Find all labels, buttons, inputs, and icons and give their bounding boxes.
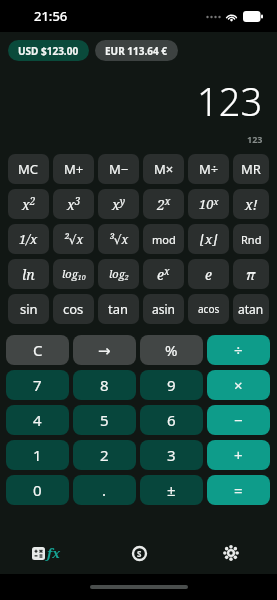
button[interactable]: − (207, 405, 270, 435)
button[interactable]: % (140, 335, 203, 365)
button[interactable]: 0 (6, 475, 69, 505)
button[interactable]: M÷ (188, 154, 229, 184)
staticText: S (137, 548, 142, 559)
button[interactable]: EUR 113.64 € (95, 40, 178, 61)
button[interactable]: ÷ (207, 335, 270, 365)
staticText: − (234, 410, 243, 430)
button[interactable]: log2 (98, 259, 139, 289)
button[interactable]: 7 (6, 370, 69, 400)
button[interactable]: Currency converter (93, 532, 185, 574)
button[interactable]: xy (98, 189, 139, 219)
staticText: ⌊x⌋ (200, 230, 218, 248)
staticText: acos (198, 302, 220, 316)
staticText: ex (157, 264, 170, 284)
button[interactable]: 3 (140, 440, 203, 470)
button[interactable]: e (188, 259, 229, 289)
button[interactable]: x2 (8, 189, 49, 219)
staticText: 2x (157, 194, 171, 214)
button[interactable]: 2 (73, 440, 136, 470)
button[interactable]: 4 (6, 405, 69, 435)
staticText: fx (47, 544, 61, 562)
button[interactable]: ²√x (53, 224, 94, 254)
button[interactable]: MR (233, 154, 269, 184)
staticText: e (205, 265, 212, 284)
button[interactable]: ± (140, 475, 203, 505)
button[interactable]: sin (8, 294, 49, 324)
staticText: EUR 113.64 € (105, 44, 168, 58)
button[interactable]: atan (233, 294, 269, 324)
button[interactable]: ⌊x⌋ (188, 224, 229, 254)
staticText: + (234, 445, 243, 465)
staticText: 9 (167, 375, 176, 395)
staticText: M× (154, 160, 174, 178)
button[interactable]: M× (143, 154, 184, 184)
button[interactable]: M+ (53, 154, 94, 184)
staticText: MC (18, 160, 39, 178)
button[interactable]: mod (143, 224, 184, 254)
button[interactable]: . (73, 475, 136, 505)
button[interactable]: M− (98, 154, 139, 184)
button[interactable]: ln (8, 259, 49, 289)
button[interactable]: MC (8, 154, 49, 184)
staticText: M− (109, 160, 129, 178)
staticText: . (102, 480, 107, 500)
button[interactable]: + (207, 440, 270, 470)
button[interactable]: x3 (53, 189, 94, 219)
button[interactable]: ³√x (98, 224, 139, 254)
staticText: atan (238, 301, 264, 317)
staticText: ²√x (64, 231, 83, 247)
staticText: 10x (199, 195, 219, 213)
staticText: ÷ (234, 340, 243, 360)
button[interactable]: 1 (6, 440, 69, 470)
staticText: 7 (33, 375, 42, 395)
staticText: → (98, 342, 111, 359)
staticText: asin (152, 301, 175, 317)
staticText: 3 (167, 445, 176, 465)
button[interactable]: 2x (143, 189, 184, 219)
staticText: tan (108, 300, 129, 318)
staticText: 1 (33, 445, 42, 465)
staticText: 2 (100, 445, 109, 465)
button[interactable]: tan (98, 294, 139, 324)
staticText: 0 (33, 480, 42, 500)
staticText: cos (63, 300, 84, 318)
button[interactable]: π (233, 259, 269, 289)
staticText: 123 (247, 133, 263, 145)
button[interactable]: Rnd (233, 224, 269, 254)
staticText: log2 (109, 266, 129, 282)
button[interactable]: 5 (73, 405, 136, 435)
staticText: M÷ (199, 160, 219, 178)
button[interactable]: asin (143, 294, 184, 324)
staticText: Rnd (241, 232, 262, 247)
button[interactable]: 6 (140, 405, 203, 435)
staticText: sin (20, 300, 38, 318)
button[interactable]: → (73, 335, 136, 365)
button[interactable]: acos (188, 294, 229, 324)
staticText: 8 (100, 375, 109, 395)
staticText: = (234, 480, 243, 500)
button[interactable]: ex (143, 259, 184, 289)
staticText: MR (241, 160, 261, 178)
staticText: ± (167, 480, 176, 500)
button[interactable]: 8 (73, 370, 136, 400)
button[interactable]: cos (53, 294, 94, 324)
button[interactable]: Settings (185, 532, 277, 574)
button[interactable]: = (207, 475, 270, 505)
staticText: 21:56 (34, 7, 68, 25)
button[interactable]: log10 (53, 259, 94, 289)
staticText: ³√x (109, 231, 128, 247)
button[interactable]: C (6, 335, 69, 365)
staticText: 4 (33, 410, 42, 430)
button[interactable]: 1/x (8, 224, 49, 254)
staticText: 5 (100, 410, 109, 430)
button[interactable]: x! (233, 189, 269, 219)
staticText: M+ (64, 160, 84, 178)
button[interactable]: Calculator (0, 532, 93, 574)
staticText: 1/x (19, 230, 38, 248)
button[interactable]: 9 (140, 370, 203, 400)
button[interactable]: 10x (188, 189, 229, 219)
button[interactable]: × (207, 370, 270, 400)
staticText: USD $123.00 (18, 44, 79, 58)
button[interactable]: USD $123.00 (8, 40, 89, 61)
staticText: x! (245, 195, 258, 214)
